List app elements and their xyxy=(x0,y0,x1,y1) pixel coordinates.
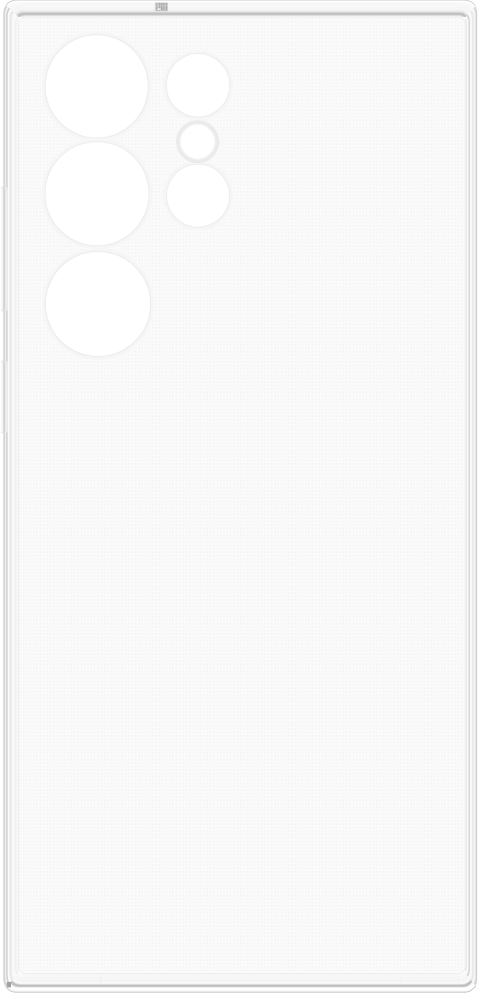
button[interactable]: Clear protective phone case, product pho… xyxy=(0,0,480,993)
